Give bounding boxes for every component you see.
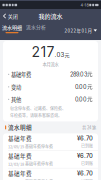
staticText: 基础年费: [8, 169, 32, 177]
button[interactable]: 流水明细: [0, 23, 24, 37]
staticText: 12/05/15 基础年费停车费: [8, 144, 53, 149]
staticText: 217: [31, 43, 54, 60]
staticText: 流水分析: [26, 23, 46, 30]
button[interactable]: 关闭: [0, 9, 22, 23]
button[interactable]: 2022年01月: [64, 23, 101, 38]
staticText: 元: [64, 51, 69, 58]
staticText: 2022年01月: [64, 27, 92, 34]
button[interactable]: 基础年费: [3, 133, 98, 150]
button[interactable]: 基础年费: [3, 168, 98, 180]
staticText: 基础年费: [8, 134, 32, 142]
staticText: ¥6.70: [77, 152, 93, 159]
staticText: ¥6.70: [77, 135, 93, 142]
staticText: 4:18: [80, 3, 88, 7]
staticText: 关闭: [8, 12, 18, 20]
staticText: 12/01/22 基础年费停车费: [8, 179, 53, 180]
staticText: 我的流水: [38, 12, 62, 20]
staticText: 其他: [11, 95, 21, 103]
staticText: 0.00元: [75, 96, 93, 103]
staticText: 已到账: [81, 143, 93, 149]
staticText: 12/03/18 基础年费停车费: [8, 161, 53, 167]
staticText: 本月流水: [42, 61, 58, 67]
staticText: 0.00元: [75, 83, 93, 90]
staticText: 基础年费: [11, 70, 31, 78]
staticText: 包含停车费、过路费、保险费、: [10, 106, 66, 111]
button[interactable]: 流水分析: [24, 23, 48, 37]
staticText: 年检费等，请联系客服咨询。: [10, 113, 62, 118]
staticText: 已到账: [81, 161, 93, 166]
staticText: 基础年费: [8, 152, 32, 160]
staticText: ¥6.70: [77, 170, 93, 177]
staticText: 共 24 笔: [82, 124, 96, 130]
staticText: 流水明细: [8, 123, 32, 131]
staticText: 已到账: [81, 178, 93, 180]
staticText: 289.03元: [70, 71, 93, 78]
button[interactable]: 基础年费: [3, 151, 98, 168]
staticText: .03: [54, 51, 64, 58]
staticText: 变动: [11, 83, 21, 91]
staticText: 流水明细: [2, 23, 22, 31]
